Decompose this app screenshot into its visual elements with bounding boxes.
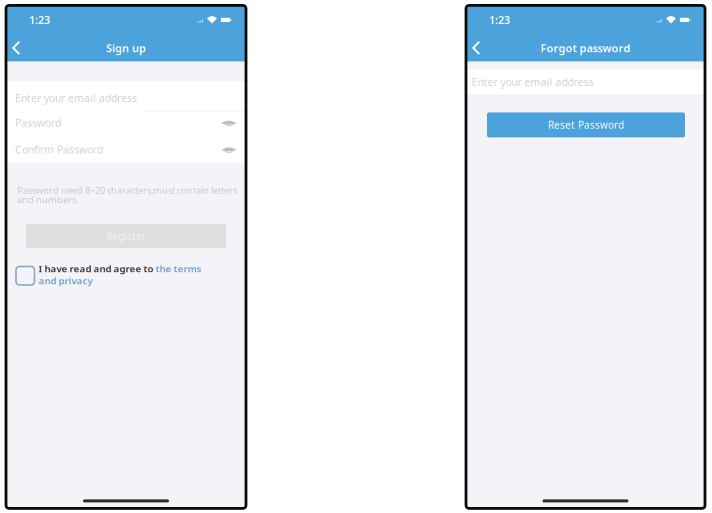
staticText: the terms <box>155 262 201 275</box>
button[interactable]: Confirm Password <box>6 136 246 163</box>
staticText: I have read and agree to <box>38 262 155 275</box>
button[interactable]: Back <box>6 36 32 60</box>
button[interactable]: Enter your email address <box>6 81 246 109</box>
staticText: Sign up <box>106 40 146 55</box>
staticText: and numbers. <box>17 193 78 206</box>
button[interactable]: Reset Password <box>487 112 685 137</box>
staticText: Register <box>106 229 146 243</box>
staticText: 1:23 <box>29 13 50 27</box>
button[interactable]: Enter your email address <box>466 69 705 94</box>
staticText: Forgot password <box>540 40 630 55</box>
staticText: Enter your email address <box>471 75 593 89</box>
staticText: Enter your email address <box>15 91 137 105</box>
staticText: Reset Password <box>548 118 624 132</box>
staticText: Password need 8~20 characters,must conta… <box>17 184 237 196</box>
staticText: Password <box>15 116 61 130</box>
button[interactable]: I have read and agree to <box>15 268 238 293</box>
button[interactable]: Back <box>466 36 492 60</box>
button[interactable]: Password <box>6 109 246 136</box>
staticText: and privacy <box>38 274 92 287</box>
staticText: Confirm Password <box>15 142 103 156</box>
staticText: 1:23 <box>489 13 510 27</box>
